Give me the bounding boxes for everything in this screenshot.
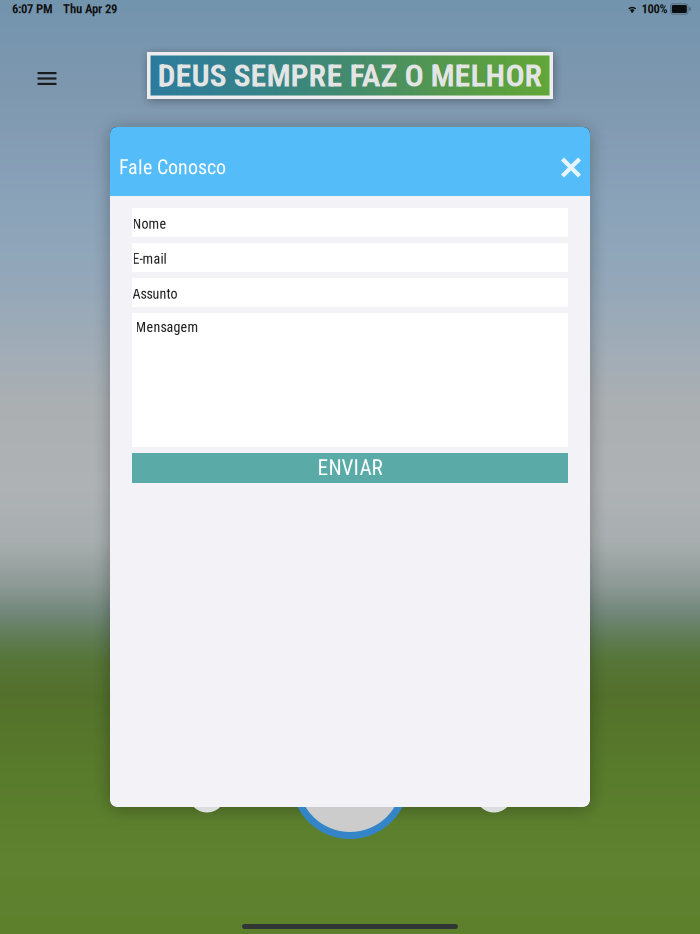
- button[interactable]: Menu: [27, 58, 67, 98]
- button[interactable]: Close: [551, 147, 591, 187]
- staticText: 6:07 PM: [12, 2, 53, 16]
- staticText: 100%: [642, 2, 668, 16]
- staticText: Thu Apr 29: [63, 2, 117, 16]
- staticText: ENVIAR: [317, 455, 382, 480]
- staticText: DEUS SEMPRE FAZ O MELHOR: [157, 57, 542, 94]
- staticText: Mensagem: [135, 319, 198, 335]
- staticText: E-mail: [132, 251, 166, 267]
- button[interactable]: ENVIAR: [132, 453, 568, 483]
- staticText: Nome: [132, 216, 166, 232]
- staticText: Assunto: [132, 286, 177, 302]
- staticText: Fale Conosco: [119, 156, 226, 179]
